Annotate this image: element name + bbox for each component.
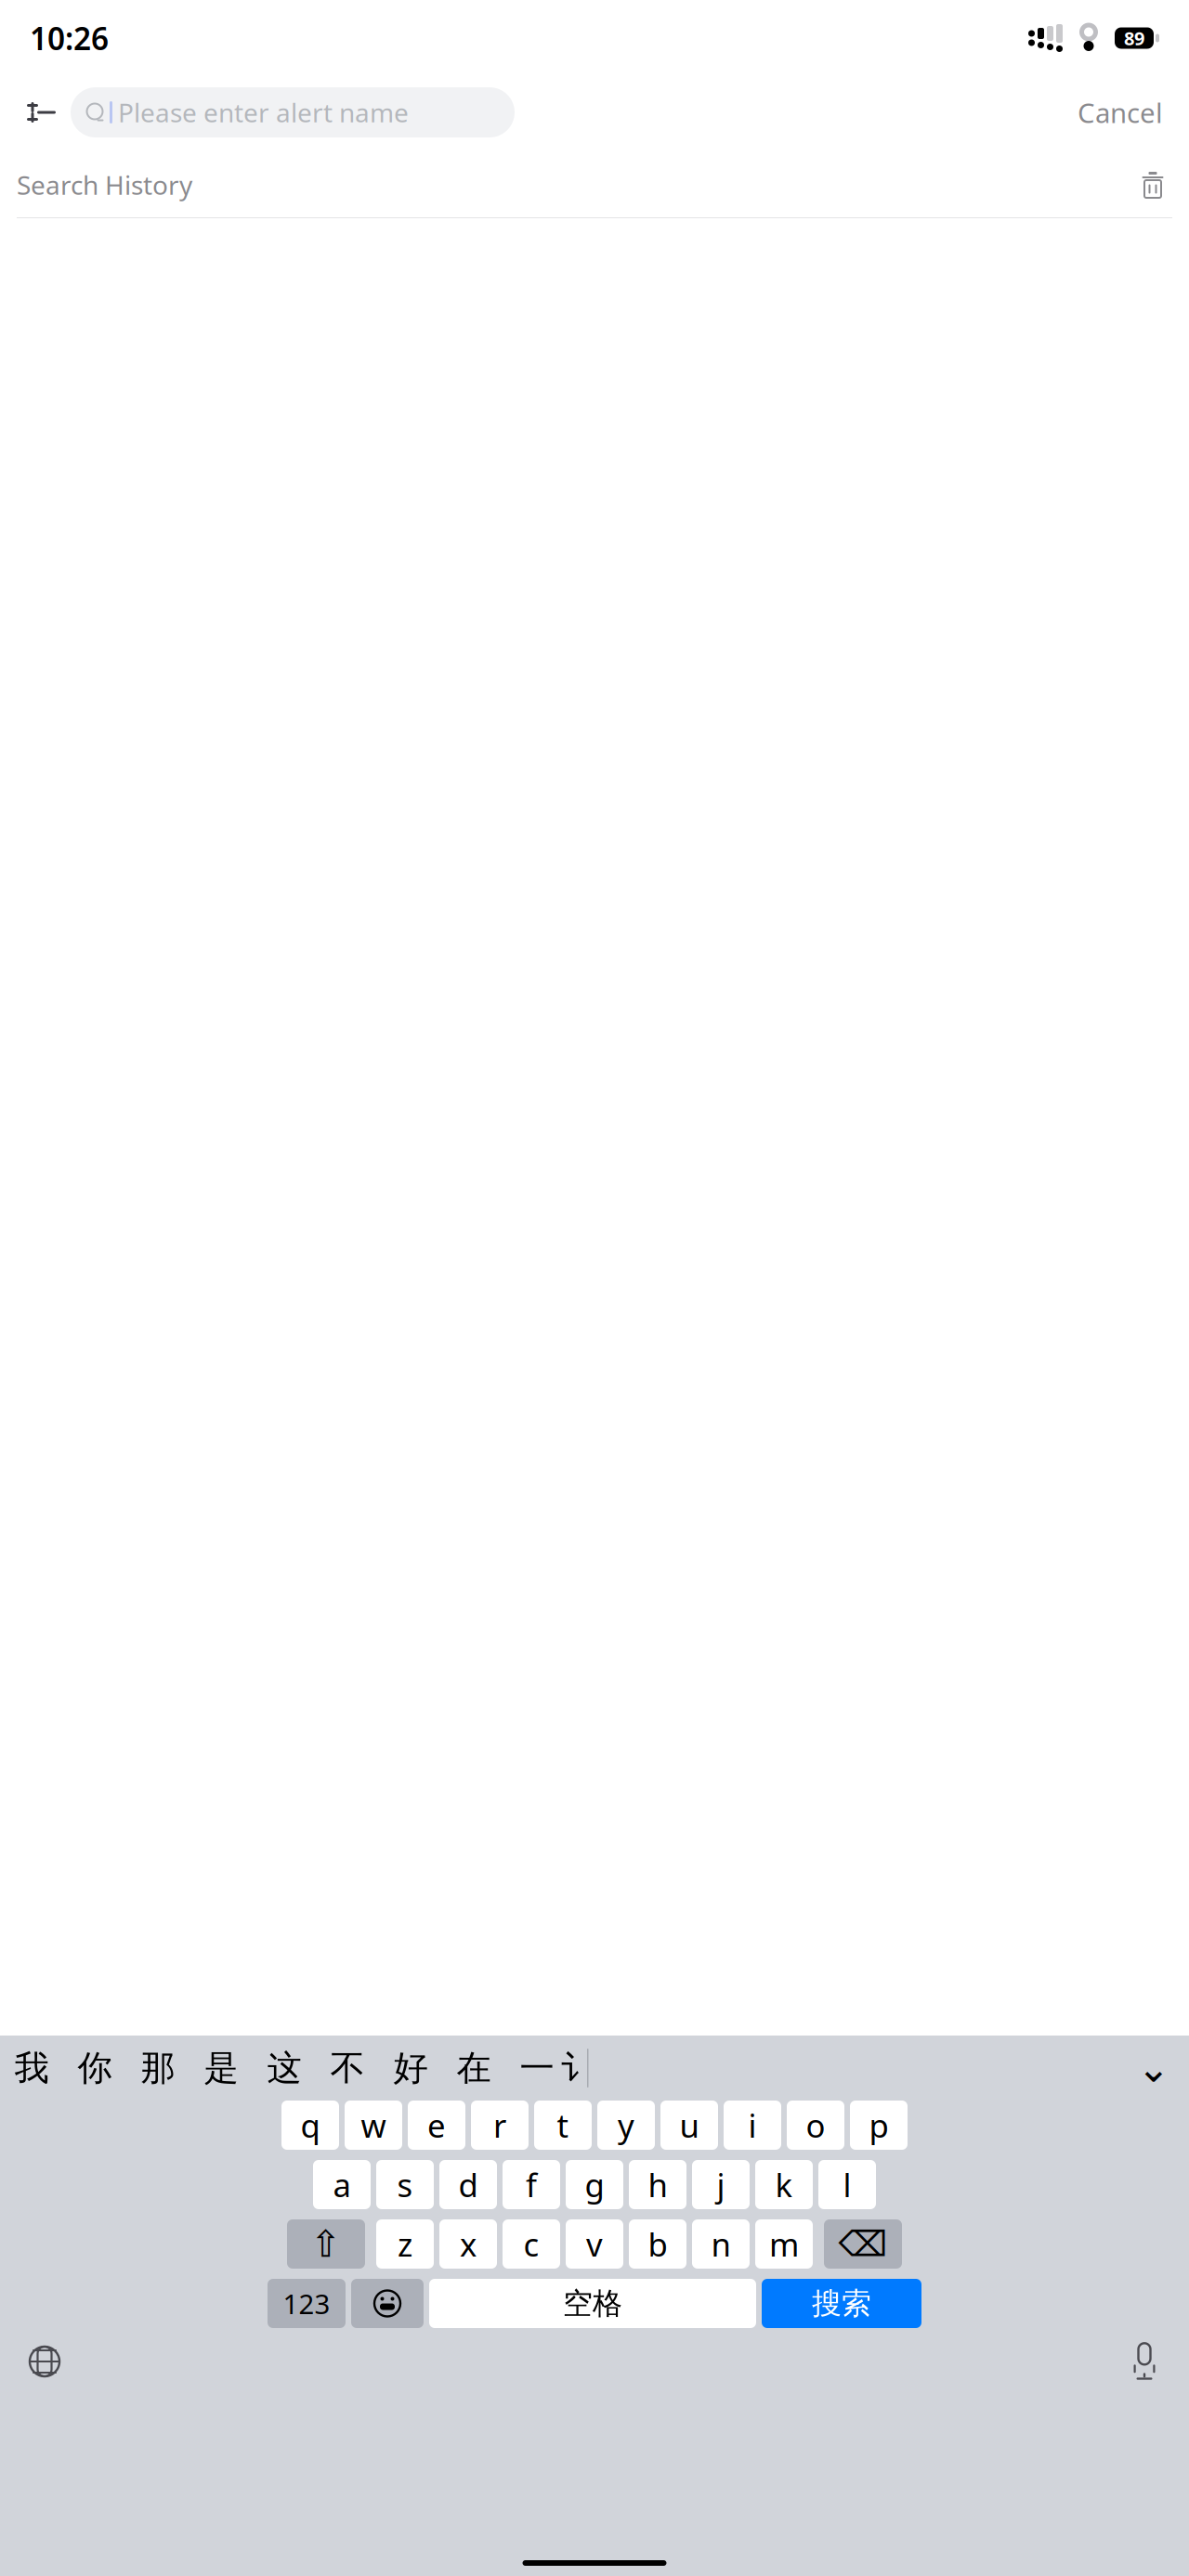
button[interactable]: 讠	[568, 2047, 587, 2089]
staticText: ⌫	[838, 2224, 888, 2264]
staticText: ⌄	[1137, 2046, 1170, 2091]
staticText: x	[460, 2223, 477, 2265]
button[interactable]: g	[566, 2160, 623, 2209]
button[interactable]: r	[471, 2101, 529, 2150]
button[interactable]: 是	[189, 2047, 253, 2089]
staticText: 不	[330, 2047, 365, 2089]
staticText: u	[679, 2104, 699, 2147]
staticText: z	[398, 2223, 412, 2265]
button[interactable]: Hide candidates	[1139, 2054, 1169, 2082]
button[interactable]: Switch keyboard	[24, 2341, 65, 2382]
staticText: p	[869, 2104, 888, 2147]
staticText: 是	[204, 2047, 238, 2089]
staticText: i	[748, 2104, 757, 2147]
staticText: s	[397, 2163, 413, 2206]
button[interactable]: v	[566, 2219, 623, 2269]
staticText: Cancel	[1078, 94, 1163, 130]
staticText: 空格	[563, 2285, 622, 2322]
staticText: 你	[78, 2047, 112, 2089]
staticText: g	[585, 2163, 604, 2206]
button[interactable]: x	[439, 2219, 497, 2269]
staticText: h	[648, 2163, 667, 2206]
button[interactable]: f	[503, 2160, 560, 2209]
staticText: 搜索	[812, 2285, 871, 2322]
button[interactable]: Clear search history	[1133, 165, 1172, 204]
staticText: 123	[283, 2285, 330, 2322]
button[interactable]: n	[692, 2219, 750, 2269]
button[interactable]: Cancel	[1068, 87, 1172, 137]
button[interactable]: Dictation	[1124, 2341, 1165, 2382]
button[interactable]: q	[281, 2101, 339, 2150]
button[interactable]: k	[755, 2160, 813, 2209]
staticText: t	[557, 2104, 569, 2147]
staticText: Search History	[17, 168, 192, 202]
button[interactable]: j	[692, 2160, 750, 2209]
staticText: d	[458, 2163, 478, 2206]
button[interactable]: y	[597, 2101, 655, 2150]
staticText: n	[711, 2223, 731, 2265]
staticText: c	[523, 2223, 539, 2265]
button[interactable]: 空格	[429, 2279, 756, 2328]
button[interactable]: 这	[253, 2047, 316, 2089]
staticText: l	[843, 2163, 851, 2206]
button[interactable]: u	[660, 2101, 718, 2150]
staticText: r	[493, 2104, 506, 2147]
button[interactable]: c	[503, 2219, 560, 2269]
button[interactable]: 在	[442, 2047, 505, 2089]
button[interactable]: 123	[268, 2279, 346, 2328]
button[interactable]: 搜索	[762, 2279, 921, 2328]
button[interactable]: 好	[379, 2047, 442, 2089]
staticText: o	[806, 2104, 825, 2147]
staticText: ⇧	[310, 2223, 342, 2265]
staticText: m	[769, 2223, 799, 2265]
button[interactable]: a	[313, 2160, 371, 2209]
staticText: a	[333, 2163, 351, 2206]
staticText: 好	[393, 2047, 428, 2089]
button[interactable]: Shift	[287, 2219, 365, 2269]
button[interactable]: s	[376, 2160, 434, 2209]
button[interactable]: l	[818, 2160, 876, 2209]
button[interactable]: b	[629, 2219, 686, 2269]
staticText: y	[618, 2104, 634, 2147]
staticText: e	[427, 2104, 446, 2147]
button[interactable]: 那	[126, 2047, 189, 2089]
staticText: 那	[141, 2047, 175, 2089]
staticText: q	[301, 2104, 320, 2147]
button[interactable]: Please enter alert name	[71, 87, 515, 137]
staticText: 10:26	[30, 18, 109, 59]
button[interactable]: Delete	[824, 2219, 902, 2269]
button[interactable]: 一	[505, 2047, 568, 2089]
button[interactable]: w	[345, 2101, 402, 2150]
button[interactable]: h	[629, 2160, 686, 2209]
button[interactable]: Back	[17, 87, 67, 137]
button[interactable]: m	[755, 2219, 813, 2269]
staticText: j	[717, 2163, 725, 2206]
staticText: k	[775, 2163, 793, 2206]
button[interactable]: i	[724, 2101, 781, 2150]
button[interactable]: o	[787, 2101, 844, 2150]
staticText: v	[586, 2223, 603, 2265]
button[interactable]: 你	[63, 2047, 126, 2089]
staticText: 在	[457, 2047, 491, 2089]
button[interactable]: p	[850, 2101, 908, 2150]
button[interactable]: 我	[0, 2047, 63, 2089]
button[interactable]: d	[439, 2160, 497, 2209]
button[interactable]: z	[376, 2219, 434, 2269]
staticText: 这	[267, 2047, 301, 2089]
staticText: 讠	[561, 2047, 595, 2089]
staticText: 一	[520, 2047, 554, 2089]
staticText: b	[648, 2223, 667, 2265]
staticText: Please enter alert name	[118, 95, 409, 130]
button[interactable]: e	[408, 2101, 465, 2150]
staticText: 89	[1124, 26, 1144, 50]
button[interactable]: 不	[316, 2047, 379, 2089]
button[interactable]: Emoji	[351, 2279, 424, 2328]
button[interactable]: t	[534, 2101, 592, 2150]
staticText: f	[526, 2163, 537, 2206]
staticText: w	[361, 2104, 386, 2147]
staticText: 我	[14, 2047, 49, 2089]
